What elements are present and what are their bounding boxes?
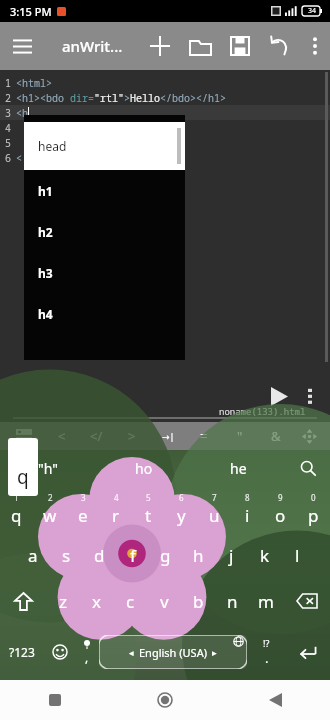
staticText: 8 [245,492,250,503]
staticText: f [130,544,136,567]
button[interactable]: ◂ [99,635,247,669]
staticText: 5 [5,136,11,150]
button[interactable]: v [147,578,181,624]
button[interactable]: </ [79,422,114,450]
staticText: he [230,459,247,478]
staticText: English (USA) [139,645,207,660]
button[interactable]: & [258,422,294,450]
staticText: < [16,151,22,165]
button[interactable]: 4 [99,486,132,532]
button[interactable]: a [16,532,50,578]
button[interactable]: Move cursor [294,422,324,450]
button[interactable]: 2 [33,486,66,532]
staticText: 6 [5,151,11,165]
staticText: & [271,427,281,445]
button[interactable]: j [215,532,248,578]
button[interactable]: x [79,578,113,624]
staticText: x [92,590,101,613]
button[interactable]: Keyboard layout [4,422,44,450]
staticText: h1 [38,183,53,199]
staticText: n [227,590,238,613]
staticText: ho [135,459,153,478]
button[interactable]: ho [96,450,191,486]
button[interactable]: c [113,578,147,624]
button[interactable]: Home [110,680,220,720]
button[interactable]: n [215,578,249,624]
button[interactable]: h1 [24,170,185,211]
button[interactable]: Shift [0,578,46,624]
button[interactable]: , [75,624,99,680]
button[interactable]: z [46,578,79,624]
button[interactable]: k [248,532,281,578]
button[interactable]: m [249,578,283,624]
button[interactable]: Search [286,450,330,486]
button[interactable]: Undo [260,26,300,66]
button[interactable]: Save [220,26,260,66]
button[interactable]: " [222,422,258,450]
button[interactable]: h [182,532,215,578]
button[interactable]: Enter [285,624,330,680]
button[interactable]: Open folder [180,26,220,66]
staticText: <html> [16,76,52,90]
staticText: t [145,504,152,527]
button[interactable]: 0 [297,486,330,532]
button[interactable]: he [191,450,286,486]
button[interactable]: Backspace [283,578,330,624]
staticText: m [258,590,274,613]
button[interactable]: 1 [0,486,33,532]
button[interactable]: Emoji [44,624,75,680]
staticText: p [308,504,319,527]
button[interactable]: h3 [24,252,185,293]
staticText: q [11,504,22,527]
staticText: 1 [5,76,11,90]
button[interactable]: New [140,26,180,66]
button[interactable]: = [186,422,222,450]
button[interactable]: g [149,532,182,578]
button[interactable]: Menu [0,24,44,68]
staticText: "h" [38,459,58,478]
button[interactable]: 7 [198,486,231,532]
button[interactable]: 9 [264,486,297,532]
staticText: < [58,427,66,445]
button[interactable]: More [296,382,324,410]
button[interactable]: Recent apps [0,680,110,720]
staticText: s [62,544,71,567]
button[interactable]: Run [262,379,296,413]
button[interactable]: 6 [165,486,198,532]
staticText: . [265,649,269,667]
button[interactable]: More options [300,26,330,66]
button[interactable]: !? [247,624,285,680]
button[interactable]: ?123 [0,624,44,680]
staticText: ?123 [9,644,35,660]
staticText: , [85,649,89,665]
staticText: 7 [212,492,217,503]
staticText: q [17,464,29,490]
button[interactable]: b [181,578,215,624]
staticText: anWrit... [62,36,123,56]
button[interactable]: "h" [0,450,96,486]
button[interactable]: d [83,532,116,578]
button[interactable]: 3 [66,486,99,532]
staticText: z [59,590,67,613]
button[interactable]: Back [220,680,330,720]
button[interactable]: 5 [132,486,165,532]
staticText: i [245,504,250,527]
staticText: 2 [5,91,11,105]
button[interactable]: →| [150,422,186,450]
staticText: 9 [278,492,283,503]
button[interactable]: head [24,122,185,170]
button[interactable]: h2 [24,211,185,252]
staticText: k [260,544,270,567]
staticText: ◂ [129,648,134,658]
staticText: 3:15 PM [10,4,52,19]
button[interactable]: 8 [231,486,264,532]
button[interactable]: l [281,532,314,578]
staticText: b [193,590,204,613]
staticText: 0 [311,492,316,503]
button[interactable]: s [50,532,83,578]
button[interactable]: f [116,532,149,578]
button[interactable]: h4 [24,293,185,334]
staticText: y [177,504,186,527]
